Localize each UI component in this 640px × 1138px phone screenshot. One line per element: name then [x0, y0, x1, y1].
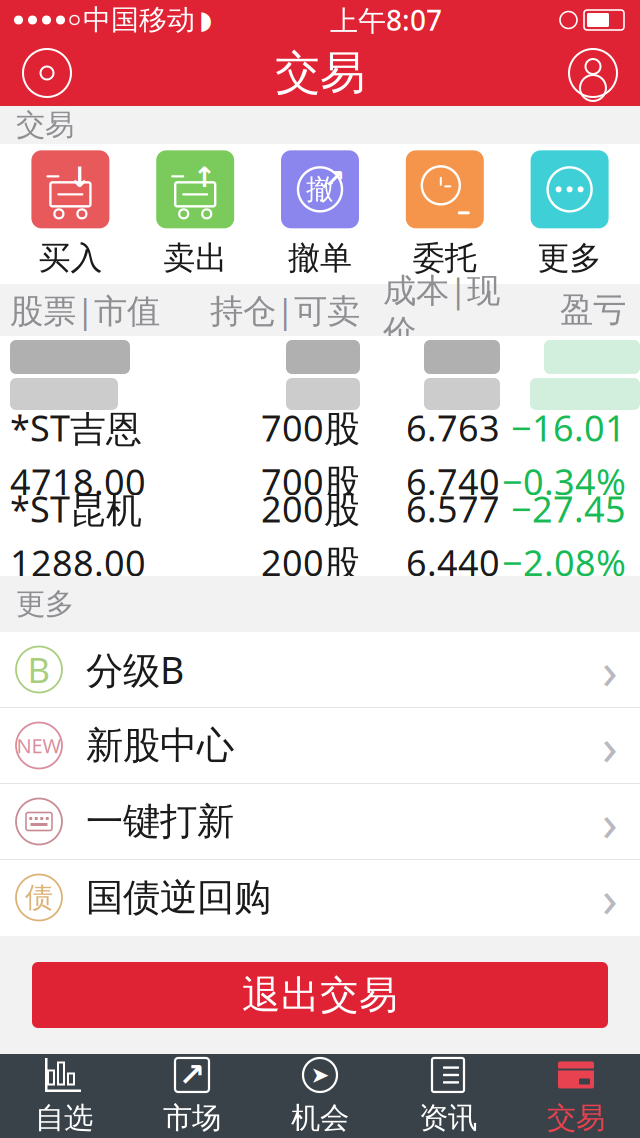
staticText: 6.740 [406, 457, 500, 505]
staticText: 交易 [547, 1100, 605, 1136]
staticText: 退出交易 [242, 971, 398, 1019]
button[interactable]: 债 [0, 860, 640, 936]
button[interactable]: 委托 [382, 146, 507, 282]
staticText: 买入 [38, 238, 102, 278]
staticText: 分级B [86, 645, 184, 694]
staticText: 6.763 [406, 404, 500, 451]
staticText: 机会 [291, 1100, 349, 1136]
staticText: *ST昆机 [10, 485, 142, 533]
staticText: ↓ [68, 161, 91, 193]
button[interactable]: ↗ [128, 1054, 256, 1138]
button[interactable]: 一键打新 [0, 784, 640, 860]
button[interactable]: *ST吉恩 [0, 414, 640, 495]
staticText: 资讯 [419, 1100, 477, 1136]
button[interactable]: B [0, 632, 640, 708]
staticText: 一键打新 [86, 799, 234, 844]
staticText: › [602, 712, 618, 779]
staticText: 国债逆回购 [86, 875, 271, 920]
button[interactable]: 撤 [258, 146, 382, 282]
button[interactable]: 自选 [0, 1054, 128, 1138]
staticText: ◗ [199, 6, 212, 34]
staticText: 持仓|可卖 [210, 288, 360, 332]
staticText: 700股 [261, 404, 360, 451]
staticText: B [27, 646, 50, 692]
button[interactable]: 退出交易 [32, 962, 608, 1028]
button[interactable]: 扫一扫 [14, 40, 80, 106]
button[interactable]: *ST昆机 [0, 495, 640, 576]
button[interactable]: ↑ [133, 146, 258, 282]
staticText: 委托 [413, 238, 477, 278]
staticText: 成本|现价 [383, 267, 500, 353]
button[interactable]: 资讯 [384, 1054, 512, 1138]
staticText: 中国移动 [83, 3, 195, 37]
staticText: −27.45 [511, 485, 626, 532]
staticText: 4718.00 [10, 458, 146, 505]
staticText: 股票|市值 [10, 288, 160, 332]
staticText: 交易 [16, 107, 74, 143]
staticText: 200股 [261, 485, 360, 532]
staticText: 6.440 [406, 538, 500, 586]
staticText: *ST吉恩 [10, 404, 142, 452]
staticText: 债 [25, 880, 53, 915]
staticText: ↑ [193, 161, 216, 193]
button[interactable]: NEW [0, 708, 640, 784]
staticText: 撤 [306, 172, 334, 207]
staticText: 卖出 [163, 238, 227, 278]
button[interactable]: ↓ [8, 146, 133, 282]
staticText: 6.577 [406, 485, 500, 532]
staticText: 更多 [538, 238, 602, 278]
staticText: 700股 [261, 457, 360, 505]
staticText: › [602, 788, 618, 855]
button[interactable]: ➤ [256, 1054, 384, 1138]
staticText: 盈亏 [560, 289, 626, 330]
staticText: NEW [16, 732, 61, 759]
staticText: 交易 [275, 45, 365, 101]
staticText: 新股中心 [86, 723, 234, 768]
staticText: −0.34% [502, 457, 626, 505]
staticText: ↗ [324, 164, 345, 193]
staticText: −16.01 [511, 404, 626, 451]
button[interactable]: 我的账户 [560, 40, 626, 106]
staticText: ➤ [310, 1062, 329, 1088]
staticText: 市场 [163, 1100, 221, 1136]
staticText: 自选 [35, 1100, 93, 1136]
staticText: 撤单 [288, 238, 352, 278]
staticText: ↗ [178, 1057, 205, 1093]
staticText: › [602, 864, 618, 931]
staticText: 1288.00 [10, 539, 146, 586]
staticText: 更多 [16, 586, 74, 622]
staticText: › [602, 636, 618, 703]
staticText: 上午8:07 [330, 1, 442, 39]
staticText: 200股 [261, 538, 360, 586]
button[interactable]: 交易 [512, 1054, 640, 1138]
button[interactable]: 更多 [507, 146, 632, 282]
staticText: −2.08% [502, 538, 626, 586]
